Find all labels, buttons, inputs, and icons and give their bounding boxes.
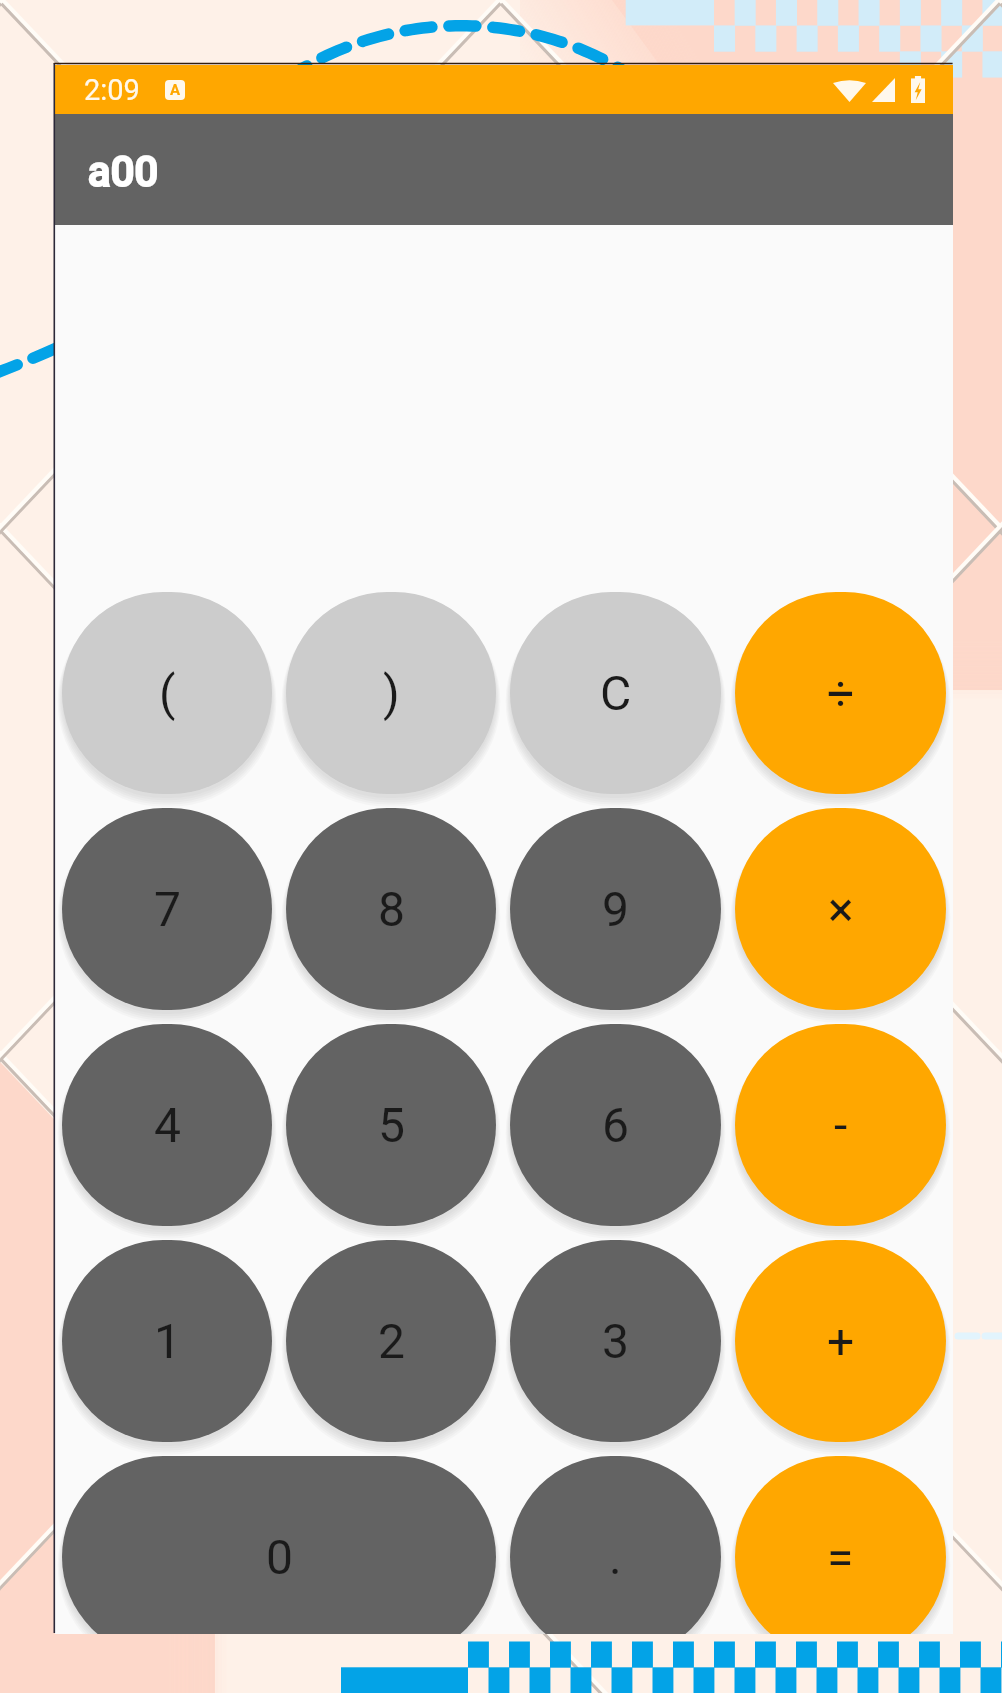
button[interactable]: 2	[286, 1240, 496, 1442]
staticText: ÷	[827, 665, 855, 721]
staticText: 8	[378, 881, 405, 937]
button[interactable]: 5	[286, 1024, 496, 1226]
staticText: )	[383, 665, 400, 721]
staticText: (	[159, 665, 176, 721]
button[interactable]: .	[510, 1456, 721, 1634]
staticText: .	[609, 1529, 622, 1585]
staticText: C	[600, 665, 632, 721]
button[interactable]: 8	[286, 808, 496, 1010]
button[interactable]: 7	[62, 808, 272, 1010]
staticText: 6	[602, 1097, 629, 1153]
button[interactable]: (	[62, 592, 272, 794]
staticText: ×	[828, 881, 854, 937]
staticText: 7	[154, 881, 181, 937]
staticText: a00	[87, 148, 158, 197]
button[interactable]: ÷	[735, 592, 946, 794]
staticText: 2	[378, 1313, 405, 1369]
staticText: 9	[602, 881, 629, 937]
button[interactable]: 9	[510, 808, 721, 1010]
button[interactable]: C	[510, 592, 721, 794]
button[interactable]: 1	[62, 1240, 272, 1442]
staticText: 5	[378, 1097, 405, 1153]
staticText: -	[834, 1097, 848, 1153]
button[interactable]: +	[735, 1240, 946, 1442]
staticText: =	[827, 1529, 854, 1585]
staticText: +	[827, 1313, 855, 1369]
staticText: 3	[602, 1313, 629, 1369]
button[interactable]: 4	[62, 1024, 272, 1226]
button[interactable]: 3	[510, 1240, 721, 1442]
staticText: A	[170, 81, 181, 99]
staticText: 0	[266, 1529, 293, 1585]
button[interactable]: =	[735, 1456, 946, 1634]
button[interactable]: ×	[735, 808, 946, 1010]
button[interactable]: 0	[62, 1456, 496, 1634]
staticText: 2:09	[84, 73, 140, 107]
staticText: 1	[154, 1313, 181, 1369]
staticText: 4	[154, 1097, 181, 1153]
button[interactable]: )	[286, 592, 496, 794]
button[interactable]: 6	[510, 1024, 721, 1226]
button[interactable]: -	[735, 1024, 946, 1226]
